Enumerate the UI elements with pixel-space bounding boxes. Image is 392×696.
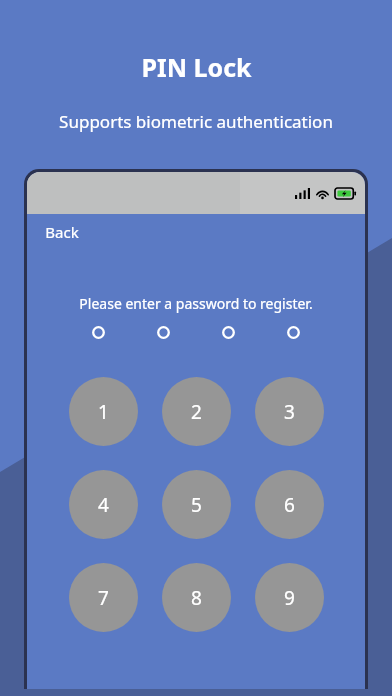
staticText: 7 [98,585,109,611]
staticText: Please enter a password to register. [27,294,365,313]
staticText: Back [45,222,79,242]
button[interactable]: 8 [162,563,231,632]
other: Cellular signal [295,188,310,199]
staticText: 5 [191,492,202,518]
staticText: 1 [98,399,109,425]
staticText: 4 [98,492,109,518]
other: Wi-Fi [316,187,329,200]
button[interactable]: 3 [255,377,324,446]
button[interactable]: Back [27,214,365,250]
staticText: PIN Lock [141,50,252,84]
staticText: 8 [191,585,202,611]
staticText: 9 [284,585,295,611]
staticText: 2 [191,399,202,425]
button[interactable]: 1 [69,377,138,446]
button[interactable]: 2 [162,377,231,446]
other: Battery charging [335,188,356,199]
button[interactable]: 5 [162,470,231,539]
button[interactable]: 9 [255,563,324,632]
button[interactable]: 6 [255,470,324,539]
staticText: Supports biometric authentication [59,110,333,133]
staticText: 6 [284,492,295,518]
staticText: 3 [284,399,295,425]
button[interactable]: 7 [69,563,138,632]
button[interactable]: 4 [69,470,138,539]
